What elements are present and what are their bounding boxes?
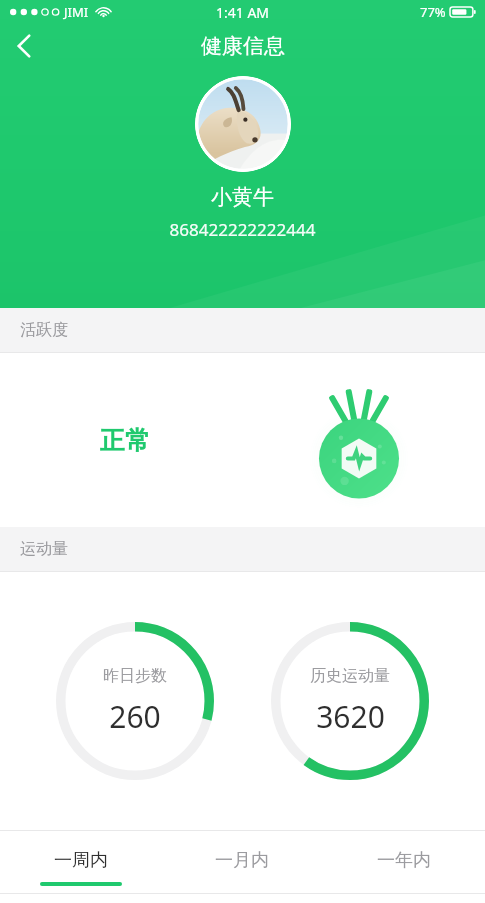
- staticText: 小黄牛: [0, 184, 485, 210]
- staticText: 昨日步数: [103, 666, 167, 686]
- staticText: 正常: [100, 425, 150, 456]
- button[interactable]: Back: [0, 24, 48, 68]
- staticText: 868422222222444: [0, 218, 485, 241]
- button[interactable]: 正常: [0, 353, 485, 527]
- staticText: 一月内: [215, 849, 269, 872]
- staticText: JIMI: [64, 3, 89, 21]
- staticText: 260: [109, 696, 161, 737]
- button[interactable]: 一年内: [323, 831, 485, 893]
- staticText: 1:41 AM: [216, 3, 270, 22]
- staticText: 健康信息: [201, 33, 285, 59]
- staticText: 一年内: [377, 849, 431, 872]
- staticText: 3620: [316, 696, 385, 737]
- staticText: 一周内: [54, 849, 108, 872]
- button[interactable]: Avatar: [195, 76, 291, 172]
- button[interactable]: 一周内: [0, 831, 161, 893]
- button[interactable]: 一月内: [161, 831, 323, 893]
- staticText: 活跃度: [20, 320, 68, 340]
- staticText: 历史运动量: [310, 666, 390, 686]
- staticText: 77%: [420, 3, 446, 21]
- button[interactable]: 历史运动量: [269, 620, 431, 782]
- staticText: 运动量: [20, 539, 68, 559]
- button[interactable]: 昨日步数: [54, 620, 216, 782]
